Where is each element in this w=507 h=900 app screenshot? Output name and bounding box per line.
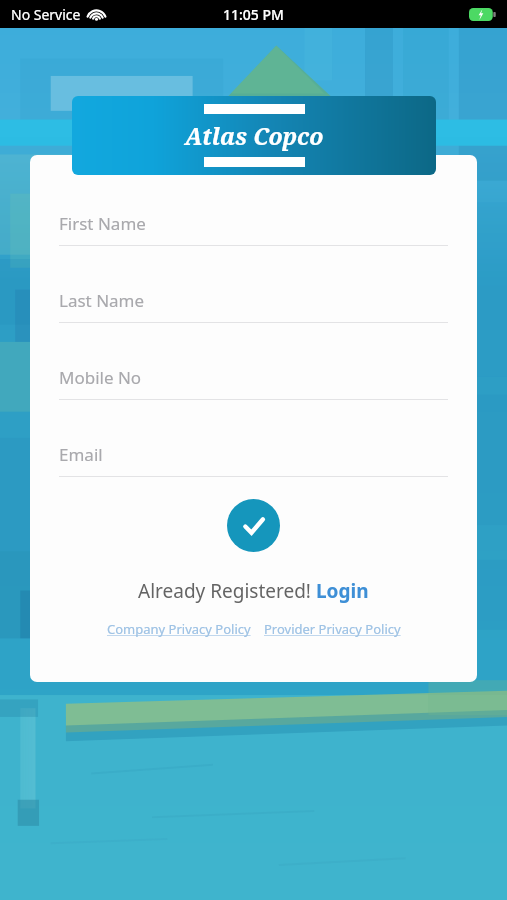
button[interactable]: Last Name — [59, 278, 448, 323]
button[interactable]: Email — [59, 432, 448, 477]
staticText: Company Privacy Policy — [107, 620, 251, 638]
button[interactable]: Submit registration — [227, 499, 280, 552]
button[interactable]: First Name — [59, 201, 448, 246]
button[interactable]: Mobile No — [59, 355, 448, 400]
staticText: First Name — [59, 212, 146, 235]
staticText: Email — [59, 443, 103, 466]
button[interactable]: Login — [316, 578, 369, 604]
staticText: Atlas Copco — [185, 120, 324, 151]
staticText: Mobile No — [59, 366, 142, 389]
staticText: 11:05 PM — [223, 5, 284, 24]
staticText: Provider Privacy Policy — [264, 620, 401, 638]
staticText: Login — [316, 578, 369, 604]
button[interactable]: Provider Privacy Policy — [262, 620, 403, 638]
staticText: Already Registered! — [138, 578, 316, 604]
staticText: No Service — [11, 5, 81, 24]
button[interactable]: Company Privacy Policy — [105, 620, 253, 638]
button[interactable]: Atlas Copco — [72, 96, 436, 175]
staticText: Last Name — [59, 289, 145, 312]
